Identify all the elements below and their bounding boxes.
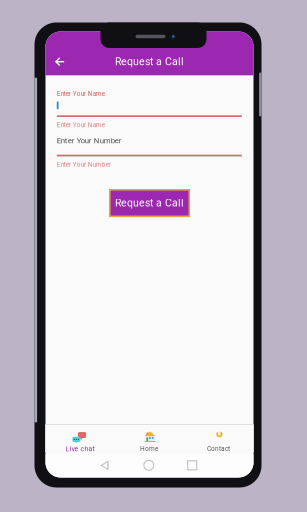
staticText: Home bbox=[140, 445, 158, 453]
staticText: Enter Your Name bbox=[57, 121, 105, 129]
staticText: Enter Your Name bbox=[57, 90, 105, 97]
button[interactable]: Request a Call bbox=[110, 190, 189, 216]
button[interactable]: Home bbox=[114, 425, 183, 453]
button[interactable]: Recents bbox=[169, 454, 213, 477]
staticText: Contact bbox=[207, 445, 230, 453]
button[interactable]: Live chat bbox=[45, 425, 114, 453]
staticText: Enter Your Number bbox=[57, 161, 111, 168]
staticText: Request a Call bbox=[115, 55, 184, 68]
button[interactable]: Back bbox=[86, 454, 130, 477]
staticText: Request a Call bbox=[115, 197, 184, 209]
staticText: Enter Your Number bbox=[57, 136, 122, 145]
staticText: Live chat bbox=[65, 445, 94, 453]
button[interactable]: Back bbox=[49, 52, 69, 71]
button[interactable]: Home bbox=[126, 454, 170, 477]
button[interactable]: Contact bbox=[183, 425, 253, 453]
